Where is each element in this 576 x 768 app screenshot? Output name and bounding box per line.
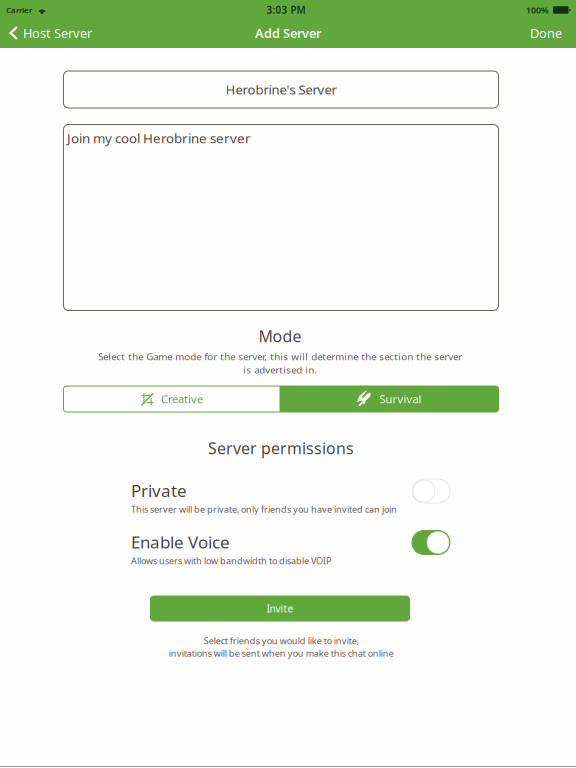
button[interactable]: Enabled toggle [412,530,450,554]
button[interactable]: Disabled toggle [412,479,450,503]
staticText: Carrier [6,5,32,15]
staticText: Invite [266,601,293,615]
staticText: This server will be private, only friend… [131,503,397,515]
button[interactable]: Creative [63,386,279,412]
staticText: Done [530,24,562,42]
staticText: 100% [526,4,549,16]
staticText: Enable Voice [131,530,230,554]
staticText: Mode [258,325,301,347]
staticText: Join my cool Herobrine server [67,129,251,147]
button[interactable]: Done [516,20,576,46]
staticText: Survival [379,391,421,407]
staticText: Select friends you would like to invite,… [168,635,393,659]
staticText: Server permissions [208,437,354,459]
staticText: Select the Game mode for the server, thi… [98,350,462,376]
staticText: Allows users with low bandwidth to disab… [131,555,331,567]
button[interactable]: Invite [150,595,410,621]
button[interactable]: Survival [279,386,498,412]
staticText: Add Server [255,24,321,42]
staticText: 3:03 PM [266,3,305,17]
staticText: Private [131,479,187,502]
staticText: Herobrine's Server [225,81,336,98]
staticText: Creative [161,391,203,407]
staticText: Host Server [23,24,92,42]
button[interactable]: Host Server [0,20,101,46]
